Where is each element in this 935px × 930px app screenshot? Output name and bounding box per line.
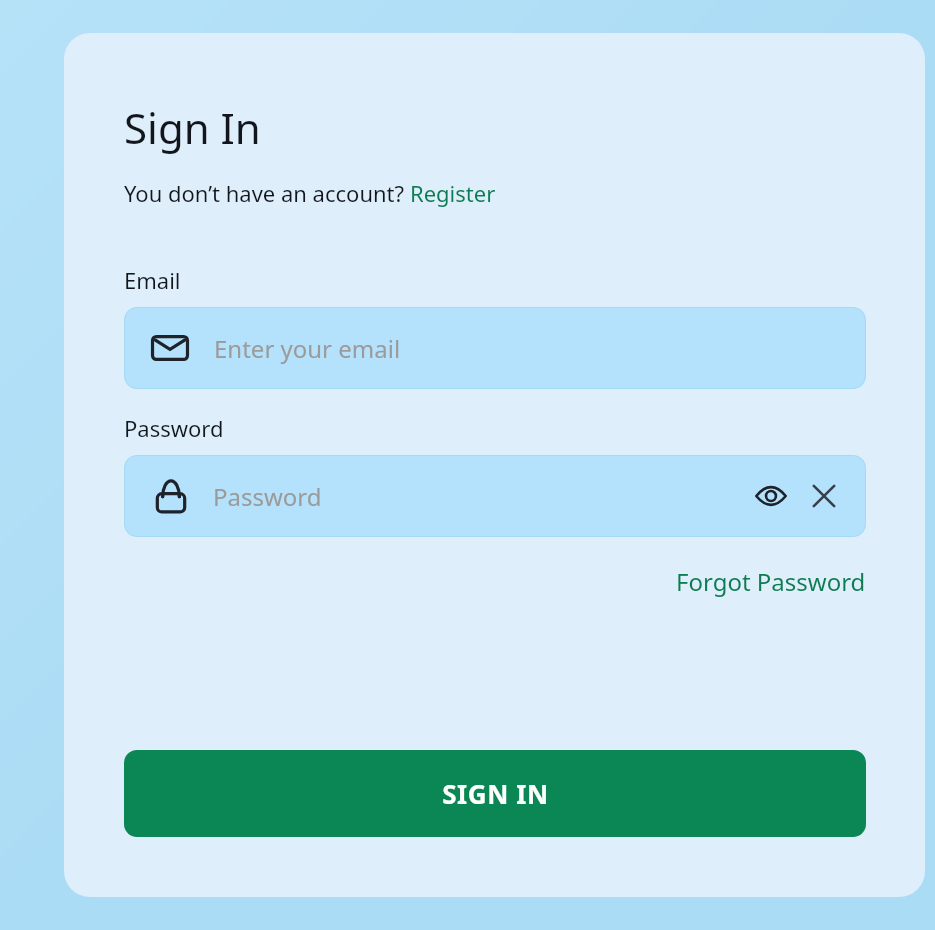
staticText: Forgot Password bbox=[676, 565, 866, 598]
button[interactable]: SIGN IN bbox=[124, 750, 866, 837]
staticText: Sign In bbox=[124, 99, 261, 156]
staticText: Password bbox=[213, 480, 322, 513]
staticText: Enter your email bbox=[214, 332, 401, 365]
staticText: SIGN IN bbox=[442, 776, 549, 811]
staticText: Password bbox=[124, 413, 224, 443]
staticText: Email bbox=[124, 265, 181, 295]
button[interactable]: Show password bbox=[751, 476, 791, 516]
button[interactable]: Forgot Password bbox=[676, 563, 866, 600]
button[interactable]: Register bbox=[410, 178, 496, 208]
button[interactable]: Password bbox=[124, 455, 866, 537]
button[interactable]: Enter your email bbox=[124, 307, 866, 389]
button[interactable]: Clear password bbox=[804, 476, 844, 516]
staticText: You don’t have an account? bbox=[124, 178, 410, 208]
staticText: Register bbox=[410, 178, 496, 208]
